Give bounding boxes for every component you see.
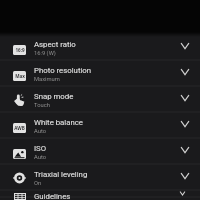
staticText: Snap mode [34,92,74,101]
staticText: On [34,180,42,187]
button[interactable]: Max [0,63,200,89]
staticText: 16:9 (W) [34,50,56,57]
button[interactable]: ISO [0,141,200,167]
staticText: Max [15,73,25,79]
staticText: Aspect ratio [34,40,76,49]
staticText: Maximum [34,76,60,83]
button[interactable]: Guidelines [0,193,200,200]
button[interactable]: Snap mode [0,89,200,115]
staticText: Auto [34,154,47,161]
staticText: Photo resolution [34,66,92,75]
staticText: Guidelines [34,192,71,199]
staticText: ISO [34,144,47,153]
button[interactable]: 16:9 [0,37,200,63]
staticText: Touch [34,102,50,109]
staticText: Triaxial leveling [34,170,88,179]
staticText: AWB [14,125,25,131]
staticText: Auto [34,128,47,135]
staticText: 16:9 [15,47,25,53]
button[interactable]: Triaxial leveling [0,167,200,193]
staticText: White balance [34,118,84,127]
button[interactable]: AWB [0,115,200,141]
